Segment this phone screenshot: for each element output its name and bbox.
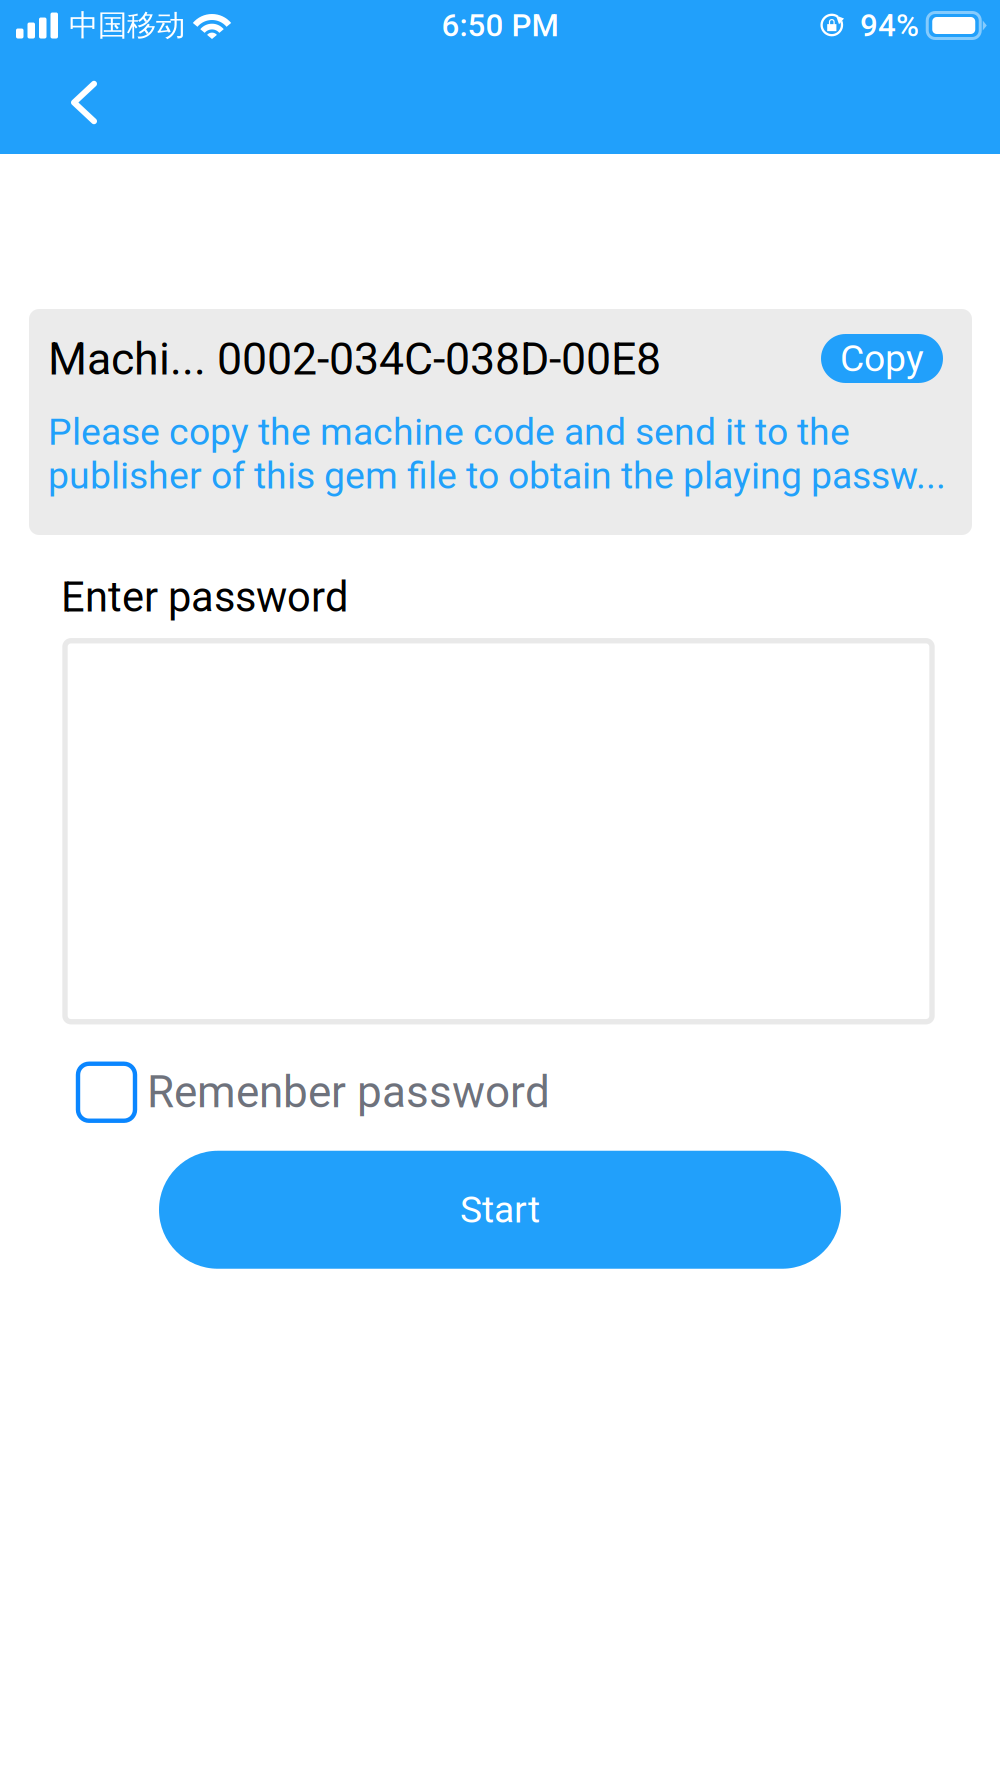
button[interactable]: Start — [159, 1151, 841, 1269]
staticText: Machi... 0002-034C-038D-00E8 — [48, 333, 661, 385]
button[interactable]: Remenber password — [78, 1064, 550, 1121]
staticText: Copy — [840, 337, 924, 380]
staticText: Please copy the machine code and send it… — [48, 410, 946, 497]
staticText: 94% — [860, 7, 919, 44]
staticText: Enter password — [61, 573, 348, 622]
staticText: Start — [460, 1188, 540, 1232]
staticText: Remenber password — [147, 1066, 550, 1118]
staticText: 中国移动 — [69, 7, 185, 44]
button[interactable]: Back — [71, 51, 161, 154]
button[interactable]: Copy — [821, 334, 943, 383]
staticText: 6:50 PM — [441, 7, 558, 44]
